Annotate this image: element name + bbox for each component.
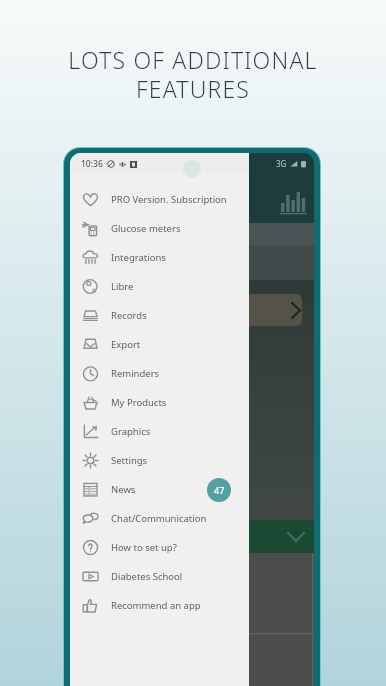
button[interactable]: Diabetes School: [70, 562, 249, 591]
button[interactable]: Recommend an app: [70, 591, 249, 620]
staticText: LOTS OF ADDITIONAL FEATURES: [68, 44, 318, 105]
staticText: Libre: [111, 280, 134, 293]
button[interactable]: Settings: [70, 446, 249, 475]
staticText: 3G: [276, 158, 287, 169]
button[interactable]: PRO Version. Subscription: [70, 185, 249, 214]
staticText: Chat/Communication: [111, 512, 207, 525]
staticText: Integrations: [111, 251, 166, 264]
staticText: News: [111, 483, 136, 496]
staticText: My Products: [111, 396, 167, 409]
staticText: Reminders: [111, 367, 160, 380]
button[interactable]: My Products: [70, 388, 249, 417]
staticText: Records: [111, 309, 147, 322]
staticText: Recommend an app: [111, 599, 201, 612]
button[interactable]: Records: [70, 301, 249, 330]
staticText: 47: [214, 484, 225, 496]
button[interactable]: Libre: [70, 272, 249, 301]
button[interactable]: Export: [70, 330, 249, 359]
button[interactable]: Glucose meters: [70, 214, 249, 243]
button[interactable]: News: [70, 475, 249, 504]
staticText: Settings: [111, 454, 148, 467]
button[interactable]: Graphics: [70, 417, 249, 446]
button[interactable]: Integrations: [70, 243, 249, 272]
staticText: Graphics: [111, 425, 151, 438]
button[interactable]: Chat/Communication: [70, 504, 249, 533]
staticText: PRO Version. Subscription: [111, 193, 227, 206]
staticText: How to set up?: [111, 541, 177, 554]
button[interactable]: How to set up?: [70, 533, 249, 562]
staticText: 10:36: [81, 158, 103, 170]
button[interactable]: Reminders: [70, 359, 249, 388]
staticText: Export: [111, 338, 141, 351]
staticText: Diabetes School: [111, 570, 183, 583]
staticText: Glucose meters: [111, 222, 181, 235]
